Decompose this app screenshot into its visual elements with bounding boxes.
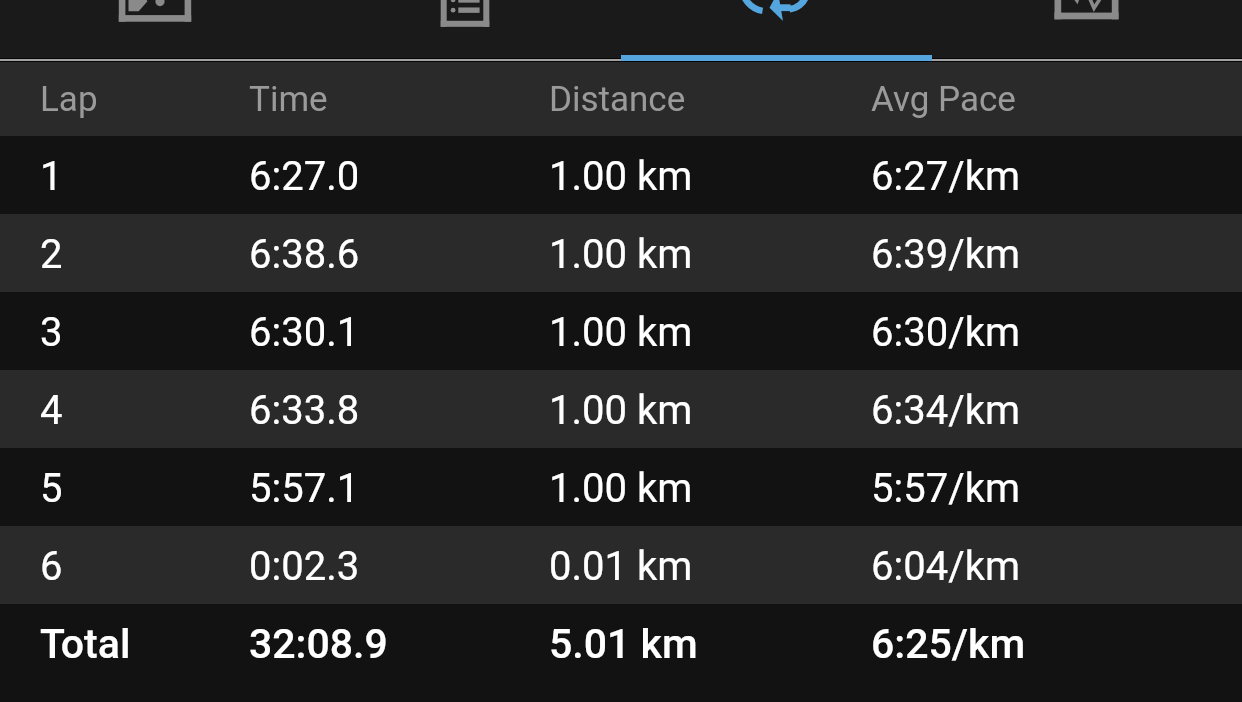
button[interactable]: Total [0,604,1242,682]
staticText: 6:04/km [871,543,1020,590]
staticText: 6:39/km [871,231,1020,278]
button[interactable]: Lap [0,62,1242,136]
staticText: 1.00 km [549,387,693,434]
staticText: 4 [40,387,63,434]
staticText: 6:25/km [871,620,1026,668]
staticText: 6:38.6 [249,231,360,278]
button[interactable]: Map [0,0,310,58]
button[interactable]: Splits list [310,0,620,58]
staticText: 0.01 km [549,543,693,590]
staticText: 6:27.0 [249,153,360,200]
staticText: 6:30/km [871,309,1020,356]
staticText: 2 [40,231,63,278]
button[interactable]: 5 [0,448,1242,526]
button[interactable]: 3 [0,292,1242,370]
button[interactable]: 4 [0,370,1242,448]
staticText: 1 [40,153,63,200]
staticText: 5 [40,465,63,512]
staticText: 1.00 km [549,309,693,356]
staticText: Total [40,620,131,668]
staticText: Distance [549,79,686,120]
button[interactable]: Laps [620,0,931,58]
button[interactable]: 6 [0,526,1242,604]
staticText: Avg Pace [871,79,1016,120]
staticText: 5.01 km [549,620,698,668]
staticText: 6:34/km [871,387,1020,434]
staticText: 6 [40,543,63,590]
staticText: 32:08.9 [249,620,388,668]
staticText: Lap [40,79,98,120]
staticText: 1.00 km [549,465,693,512]
staticText: 6:30.1 [249,309,360,356]
staticText: 5:57/km [871,465,1020,512]
button[interactable]: 2 [0,214,1242,292]
button[interactable]: 1 [0,136,1242,214]
staticText: 6:27/km [871,153,1020,200]
staticText: 1.00 km [549,153,693,200]
staticText: 3 [40,309,63,356]
staticText: 6:33.8 [249,387,360,434]
staticText: 5:57.1 [249,465,360,512]
button[interactable]: Chart [931,0,1242,58]
staticText: 0:02.3 [249,543,360,590]
staticText: 1.00 km [549,231,693,278]
staticText: Time [249,79,328,120]
